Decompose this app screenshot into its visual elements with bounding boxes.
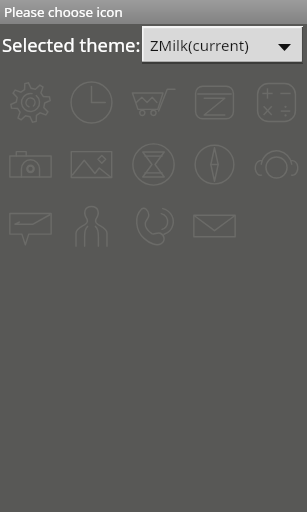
button[interactable]: Timer <box>123 133 184 195</box>
button[interactable]: Gallery <box>61 133 122 195</box>
button[interactable]: Store <box>123 71 184 133</box>
button[interactable]: Clock <box>61 71 122 133</box>
button[interactable]: Phone <box>123 194 184 256</box>
button[interactable]: Music <box>246 133 307 195</box>
button[interactable]: Camera <box>0 133 61 195</box>
button[interactable]: ZMilk <box>184 71 245 133</box>
button[interactable]: ZMilk(current) <box>142 26 303 64</box>
button[interactable]: Contacts <box>61 194 122 256</box>
button[interactable]: Compass <box>184 133 245 195</box>
button[interactable]: Email <box>184 194 245 256</box>
button[interactable]: Settings <box>0 71 61 133</box>
button[interactable]: Messages <box>0 194 61 256</box>
button[interactable]: Calculator <box>246 71 307 133</box>
staticText: ZMilk(current) <box>150 35 249 55</box>
staticText: Please choose icon <box>4 3 123 21</box>
staticText: Selected theme: <box>2 32 141 57</box>
